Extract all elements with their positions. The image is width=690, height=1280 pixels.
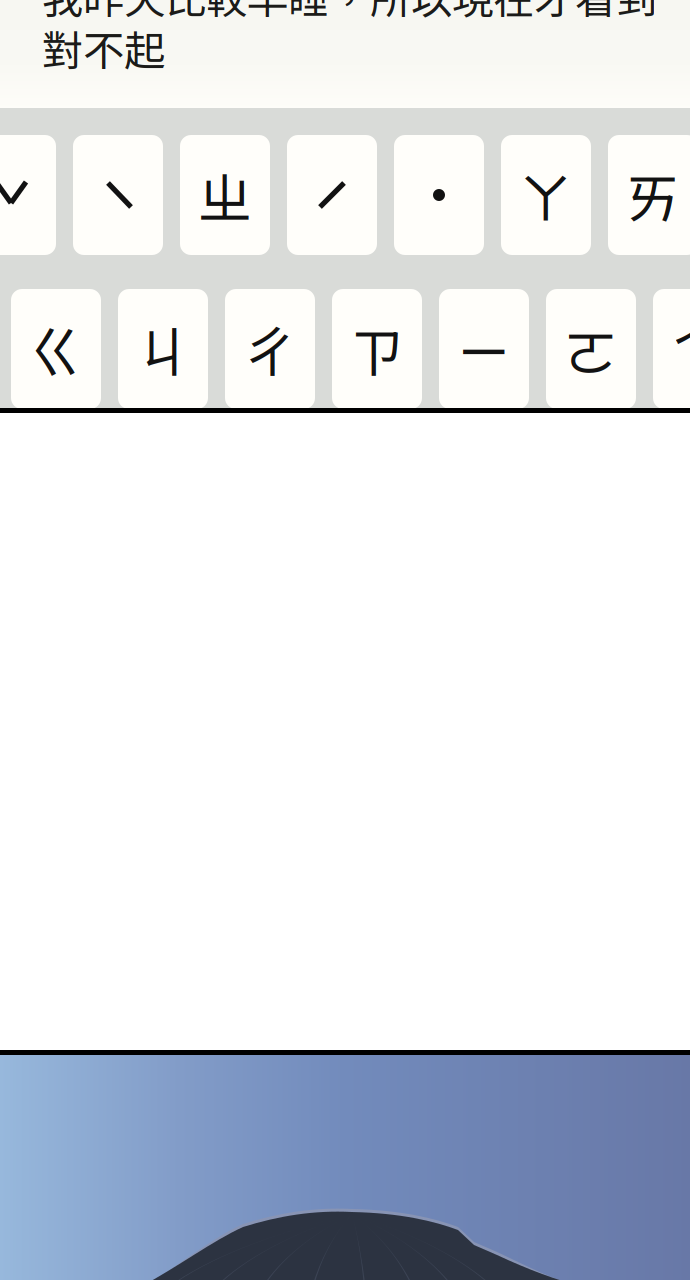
- button[interactable]: ㄞ: [608, 135, 690, 255]
- staticText: ㄐ: [135, 309, 190, 389]
- button[interactable]: ㄚ: [501, 135, 591, 255]
- staticText: ㄟ: [670, 309, 690, 389]
- staticText: ㄓ: [197, 155, 252, 235]
- staticText: ㄔ: [242, 309, 297, 389]
- button[interactable]: Second tone: [287, 135, 377, 255]
- staticText: ㄧ: [456, 309, 511, 389]
- button[interactable]: ㄔ: [225, 289, 315, 409]
- staticText: 對不起: [42, 18, 165, 78]
- button[interactable]: Neutral tone: [394, 135, 484, 255]
- button[interactable]: ㄛ: [546, 289, 636, 409]
- button[interactable]: ㄍ: [11, 289, 101, 409]
- button[interactable]: Third tone: [0, 135, 56, 255]
- button[interactable]: Fourth tone: [73, 135, 163, 255]
- button[interactable]: ㄓ: [180, 135, 270, 255]
- button[interactable]: ㄟ: [653, 289, 690, 409]
- button[interactable]: ㄐ: [118, 289, 208, 409]
- staticText: 我昨天比較早睡，所以現在才看到: [42, 0, 657, 26]
- staticText: ㄞ: [625, 155, 680, 235]
- button[interactable]: ㄧ: [439, 289, 529, 409]
- staticText: ㄚ: [518, 155, 573, 235]
- staticText: ㄍ: [28, 309, 83, 389]
- button[interactable]: ㄗ: [332, 289, 422, 409]
- staticText: ㄛ: [563, 309, 618, 389]
- staticText: ㄗ: [349, 309, 404, 389]
